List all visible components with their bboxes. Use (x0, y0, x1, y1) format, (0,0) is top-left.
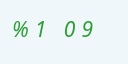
staticText: %1 09 (12, 15, 99, 44)
